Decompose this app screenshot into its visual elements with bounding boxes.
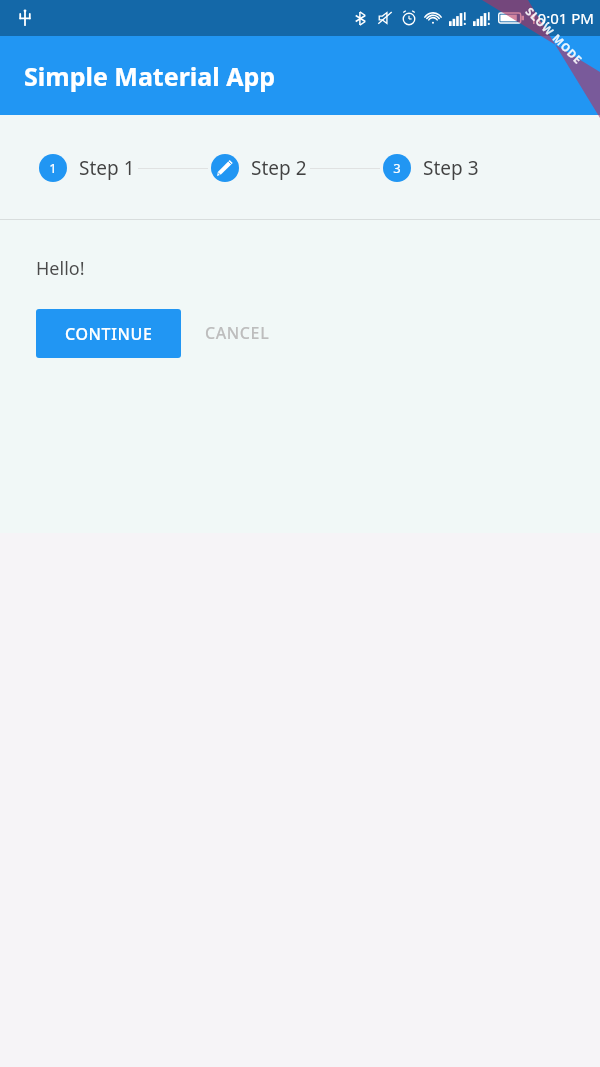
button[interactable]: 3 [380, 154, 482, 182]
staticText: Step 1 [79, 155, 135, 181]
button[interactable]: Step 2 [208, 154, 310, 182]
staticText: CONTINUE [65, 323, 153, 345]
button[interactable]: CONTINUE [36, 309, 181, 358]
staticText: Simple Material App [24, 59, 276, 93]
staticText: CANCEL [205, 322, 270, 344]
button[interactable]: CANCEL [189, 308, 286, 358]
staticText: 3 [393, 159, 401, 177]
staticText: Step 2 [251, 155, 307, 181]
staticText: SLOW MODE [523, 4, 586, 67]
staticText: Hello! [36, 256, 85, 281]
staticText: 10:01 PM [529, 8, 594, 28]
staticText: 1 [49, 159, 57, 177]
button[interactable]: 1 [36, 154, 138, 182]
staticText: Step 3 [423, 155, 479, 181]
